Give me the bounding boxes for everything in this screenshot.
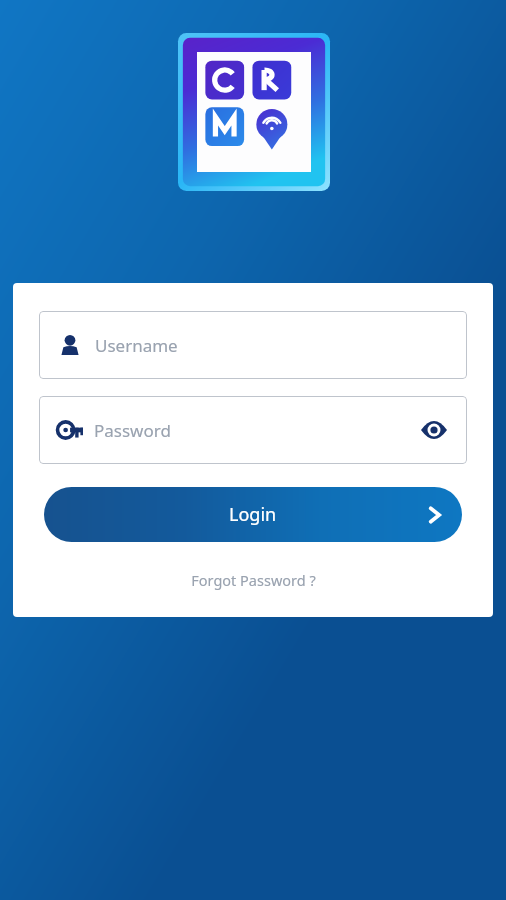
staticText: Forgot Password ? <box>191 570 316 590</box>
staticText: Password <box>94 419 417 442</box>
button[interactable]: Forgot Password ? <box>177 565 330 595</box>
button[interactable]: Show password <box>417 413 451 447</box>
button[interactable]: Password <box>39 396 467 464</box>
button[interactable]: Username <box>39 311 467 379</box>
button[interactable]: Login <box>44 487 462 542</box>
staticText: Login <box>229 502 277 527</box>
staticText: Username <box>95 334 178 357</box>
